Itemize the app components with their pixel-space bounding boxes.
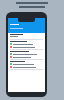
- button[interactable]: [8, 40, 45, 50]
- button[interactable]: [8, 50, 45, 60]
- button[interactable]: [8, 60, 45, 70]
